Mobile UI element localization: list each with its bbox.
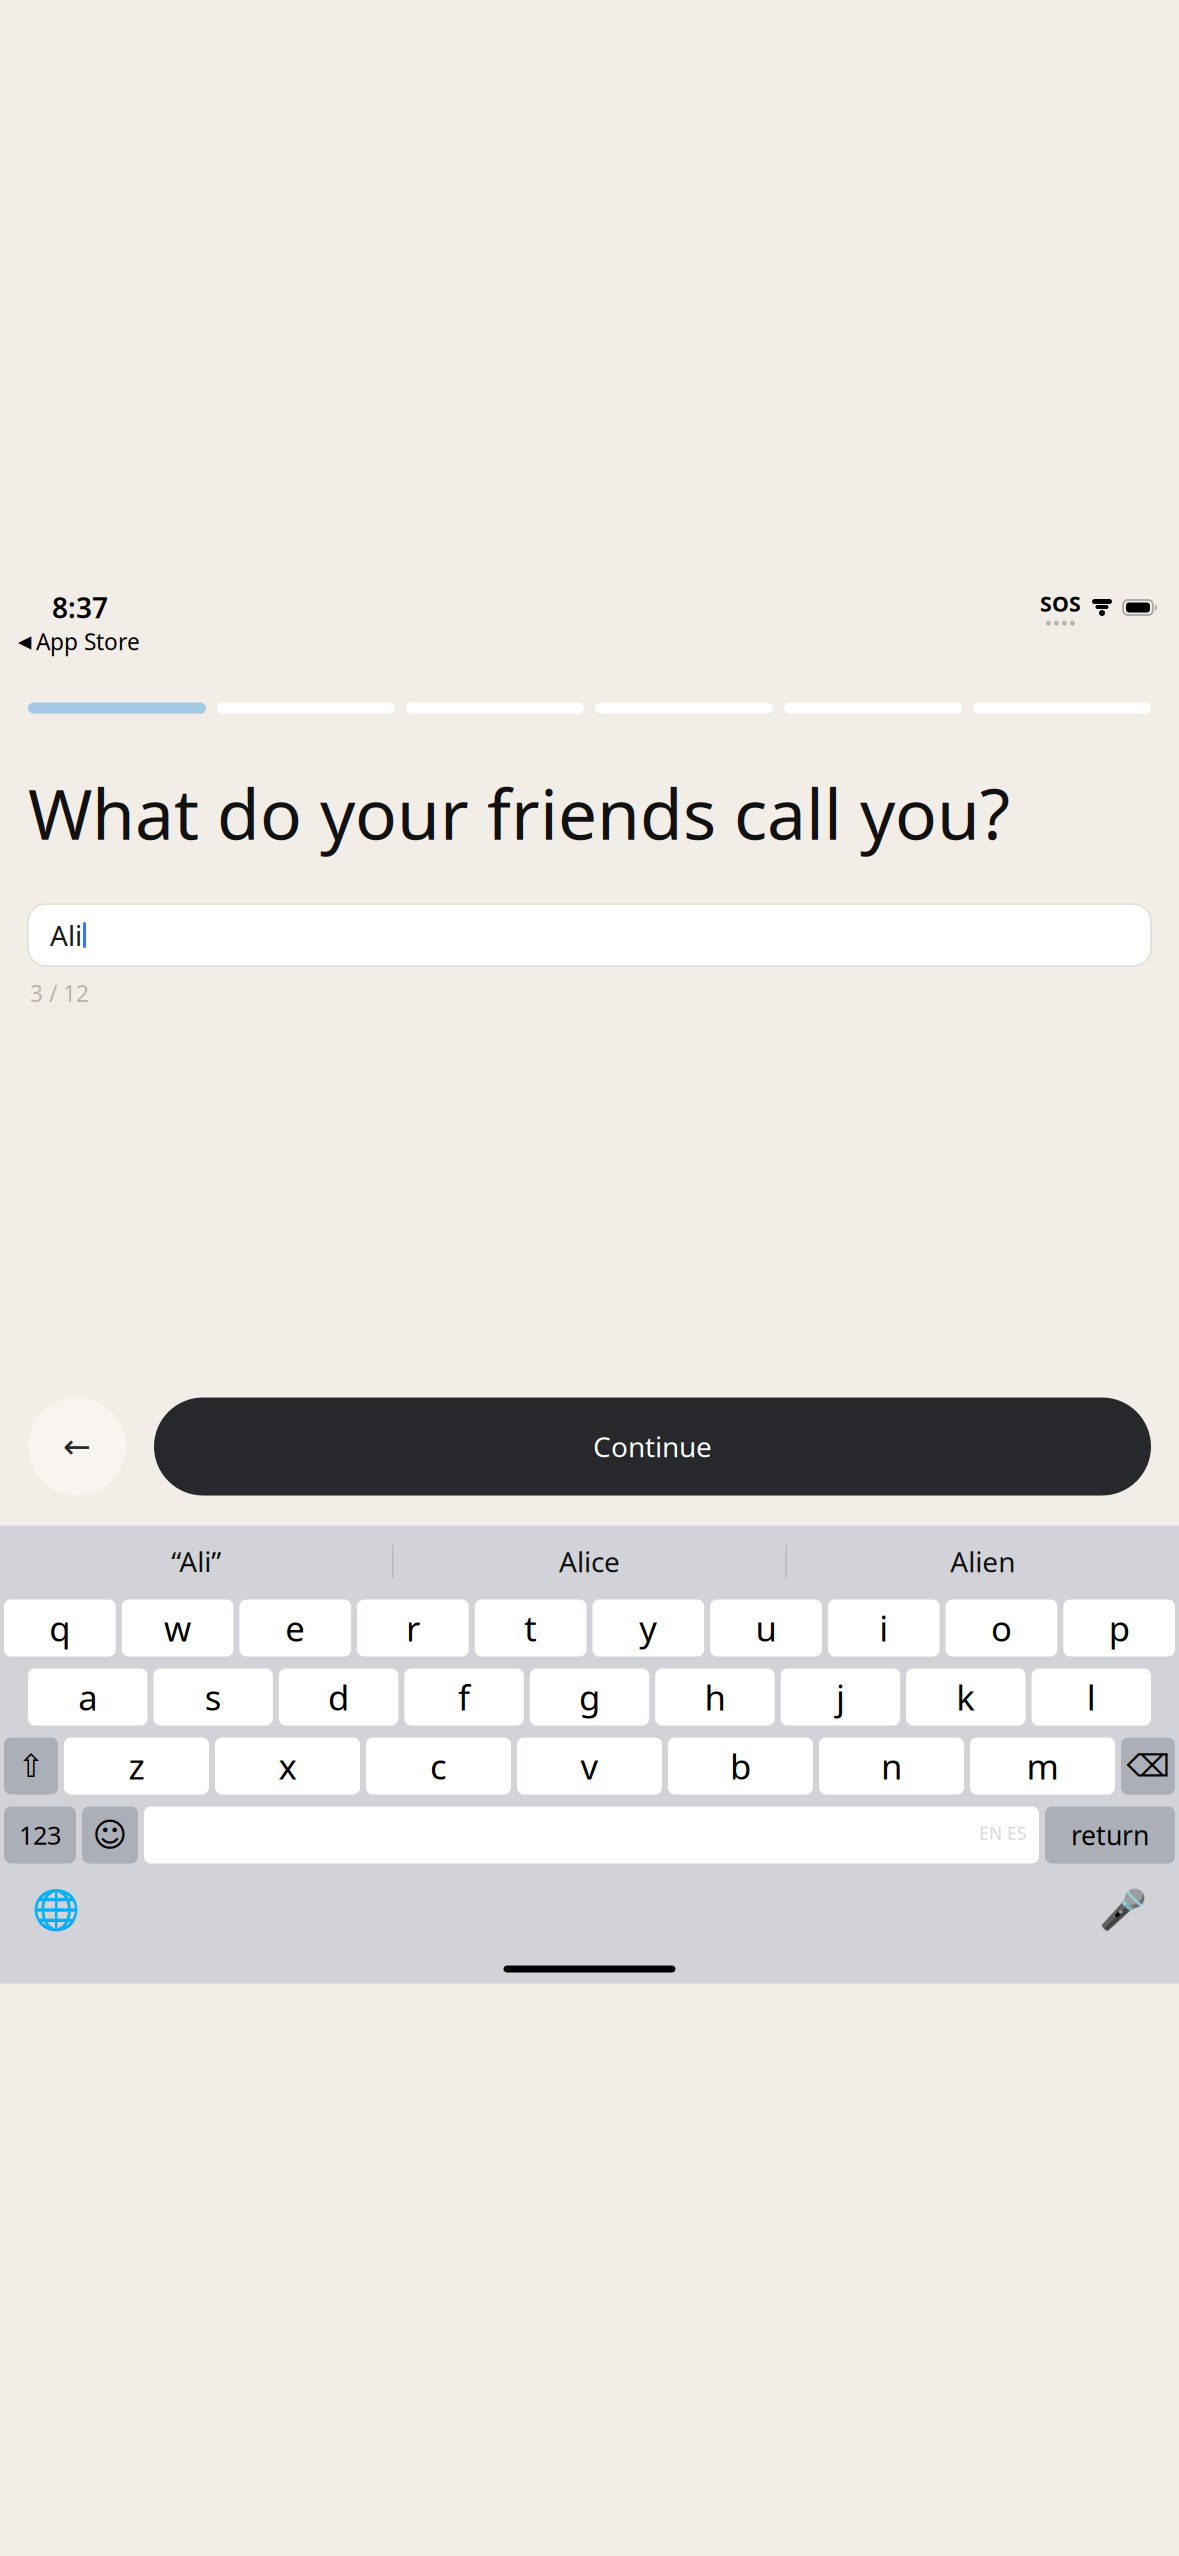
staticText: x xyxy=(278,1743,296,1789)
staticText: n xyxy=(881,1743,902,1789)
button[interactable]: v xyxy=(517,1737,662,1794)
button[interactable]: d xyxy=(279,1668,398,1725)
staticText: d xyxy=(328,1674,349,1720)
staticText: 🎤 xyxy=(1099,1887,1147,1932)
staticText: Continue xyxy=(593,1428,712,1465)
button[interactable]: h xyxy=(655,1668,775,1725)
button[interactable]: Ali xyxy=(28,904,1151,966)
staticText: 8:37 xyxy=(52,589,108,626)
button[interactable]: k xyxy=(906,1668,1025,1725)
staticText: ☺ xyxy=(92,1816,127,1854)
staticText: q xyxy=(49,1605,70,1651)
button[interactable]: ◀ xyxy=(18,626,140,657)
staticText: What do your friends call you? xyxy=(28,766,1010,860)
staticText: i xyxy=(879,1605,888,1651)
staticText: j xyxy=(836,1674,845,1720)
button[interactable]: g xyxy=(530,1668,649,1725)
button[interactable]: y xyxy=(592,1599,704,1656)
button[interactable]: i xyxy=(828,1599,940,1656)
staticText: return xyxy=(1071,1817,1149,1853)
button[interactable]: Alice xyxy=(393,1543,786,1580)
staticText: g xyxy=(579,1674,600,1720)
staticText: e xyxy=(285,1605,305,1651)
button[interactable]: x xyxy=(215,1737,360,1794)
button[interactable]: Alien xyxy=(787,1543,1179,1580)
button[interactable]: m xyxy=(970,1737,1115,1794)
button[interactable]: return xyxy=(1045,1806,1175,1863)
staticText: r xyxy=(406,1605,420,1651)
button[interactable]: s xyxy=(153,1668,273,1725)
staticText: ⇧ xyxy=(17,1748,44,1784)
staticText: w xyxy=(164,1605,191,1651)
staticText: ⌫ xyxy=(1126,1749,1169,1783)
staticText: u xyxy=(755,1605,776,1651)
staticText: k xyxy=(956,1674,975,1720)
staticText: m xyxy=(1026,1743,1058,1789)
button[interactable]: j xyxy=(781,1668,900,1725)
button[interactable]: Back xyxy=(28,1397,126,1495)
staticText: SOS xyxy=(1040,589,1081,618)
button[interactable]: r xyxy=(357,1599,469,1656)
staticText: Alice xyxy=(559,1543,620,1580)
staticText: 3 / 12 xyxy=(30,978,89,1008)
button[interactable]: n xyxy=(819,1737,964,1794)
staticText: a xyxy=(78,1674,97,1720)
button[interactable]: f xyxy=(404,1668,524,1725)
button[interactable]: b xyxy=(668,1737,813,1794)
staticText: p xyxy=(1109,1605,1130,1651)
button[interactable]: t xyxy=(475,1599,586,1656)
button[interactable]: u xyxy=(710,1599,822,1656)
staticText: 123 xyxy=(19,1818,61,1852)
button[interactable]: l xyxy=(1032,1668,1151,1725)
button[interactable]: q xyxy=(4,1599,116,1656)
staticText: ← xyxy=(63,1428,91,1465)
staticText: t xyxy=(524,1605,537,1651)
button[interactable]: o xyxy=(946,1599,1057,1656)
button[interactable]: Delete xyxy=(1121,1737,1175,1794)
button[interactable]: Dictation xyxy=(1095,1881,1151,1937)
staticText: Alien xyxy=(950,1543,1015,1580)
staticText: o xyxy=(991,1605,1012,1651)
staticText: App Store xyxy=(36,626,140,657)
button[interactable]: Emoji xyxy=(82,1806,138,1863)
staticText: b xyxy=(730,1743,751,1789)
staticText: “Ali” xyxy=(171,1543,221,1580)
button[interactable]: p xyxy=(1063,1599,1175,1656)
staticText: l xyxy=(1087,1674,1096,1720)
button[interactable]: a xyxy=(28,1668,147,1725)
staticText: f xyxy=(458,1674,470,1720)
button[interactable]: c xyxy=(366,1737,511,1794)
button[interactable]: e xyxy=(239,1599,351,1656)
button[interactable]: “Ali” xyxy=(0,1543,392,1580)
staticText: v xyxy=(580,1743,598,1789)
staticText: 🌐 xyxy=(32,1887,80,1932)
staticText: y xyxy=(639,1605,657,1651)
staticText: Ali xyxy=(50,916,82,954)
staticText: s xyxy=(205,1674,222,1720)
button[interactable]: Continue xyxy=(154,1397,1151,1495)
button[interactable]: Change keyboard xyxy=(28,1881,84,1937)
staticText: EN ES xyxy=(979,1821,1027,1844)
button[interactable]: z xyxy=(64,1737,209,1794)
staticText: z xyxy=(128,1743,144,1789)
staticText: ◀ xyxy=(18,632,31,651)
staticText: h xyxy=(704,1674,725,1720)
button[interactable]: w xyxy=(122,1599,233,1656)
button[interactable]: Shift xyxy=(4,1737,58,1794)
staticText: c xyxy=(430,1743,447,1789)
button[interactable]: Space xyxy=(144,1806,1039,1863)
button[interactable]: 123 xyxy=(4,1806,76,1863)
